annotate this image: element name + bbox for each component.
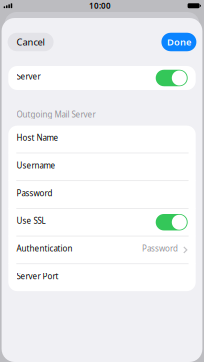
- button[interactable]: Server Port: [8, 264, 196, 291]
- button[interactable]: Server: [8, 64, 196, 91]
- staticText: Outgoing Mail Server: [16, 109, 95, 120]
- staticText: Password: [142, 243, 178, 254]
- staticText: Done: [167, 36, 191, 48]
- staticText: Server Port: [16, 271, 58, 281]
- staticText: 10:00: [89, 0, 111, 11]
- staticText: Password: [16, 188, 52, 198]
- button[interactable]: Use SSL: [8, 209, 196, 236]
- staticText: Username: [16, 160, 55, 171]
- staticText: Cancel: [17, 36, 45, 48]
- staticText: Use SSL: [16, 215, 45, 226]
- button[interactable]: Password: [8, 181, 196, 208]
- staticText: Authentication: [16, 243, 72, 254]
- button[interactable]: Authentication: [8, 236, 196, 263]
- button[interactable]: Host Name: [8, 126, 196, 153]
- staticText: Server: [16, 71, 40, 82]
- button[interactable]: Username: [8, 153, 196, 180]
- button[interactable]: Cancel: [8, 33, 54, 51]
- button[interactable]: Done: [161, 33, 196, 51]
- staticText: Host Name: [16, 132, 58, 143]
